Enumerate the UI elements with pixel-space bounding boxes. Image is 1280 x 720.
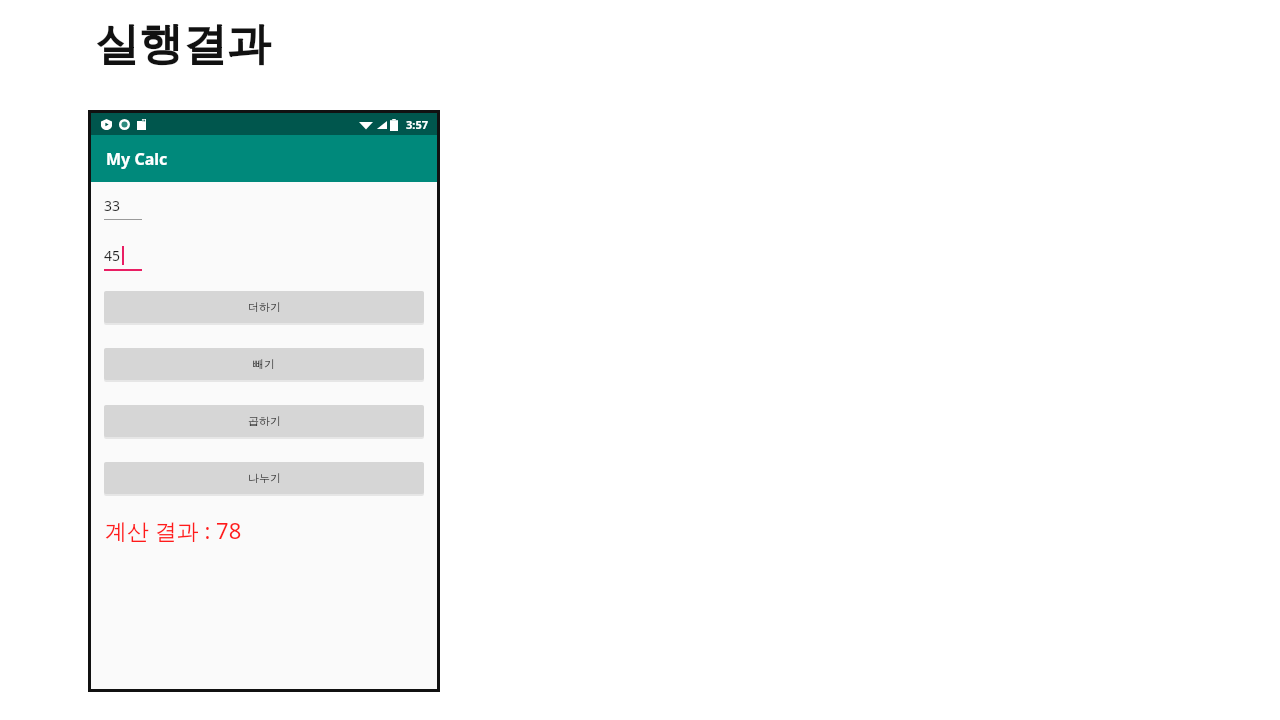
staticText: 3:57 (406, 117, 428, 132)
staticText: 45 (104, 246, 121, 265)
button[interactable]: 33 (104, 196, 142, 220)
staticText: 계산 결과 : 78 (105, 515, 242, 545)
button[interactable]: 45 (104, 246, 142, 271)
button[interactable]: 더하기 (104, 291, 424, 323)
button[interactable]: 곱하기 (104, 405, 424, 437)
staticText: 더하기 (248, 300, 281, 314)
button[interactable]: 빼기 (104, 348, 424, 380)
staticText: 빼기 (253, 357, 275, 371)
staticText: My Calc (106, 148, 168, 170)
staticText: 33 (104, 196, 121, 215)
staticText: 곱하기 (248, 414, 281, 428)
staticText: 나누기 (248, 471, 281, 485)
staticText: 실행결과 (95, 17, 271, 72)
button[interactable]: 나누기 (104, 462, 424, 494)
